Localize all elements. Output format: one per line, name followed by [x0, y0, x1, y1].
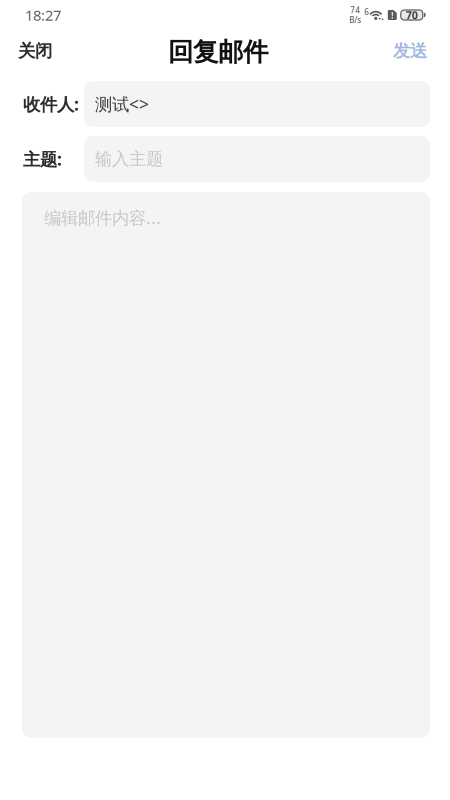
- staticText: 发送: [393, 40, 427, 62]
- staticText: 18:27: [25, 5, 61, 25]
- staticText: 70: [406, 8, 418, 22]
- staticText: 关闭: [18, 40, 52, 62]
- button[interactable]: 测试<>: [84, 81, 430, 127]
- staticText: B/s: [349, 14, 361, 25]
- button[interactable]: 关闭: [0, 30, 70, 70]
- staticText: 编辑邮件内容...: [44, 206, 161, 229]
- staticText: 主题:: [23, 147, 62, 170]
- staticText: 输入主题: [95, 148, 163, 170]
- staticText: 回复邮件: [168, 36, 268, 67]
- staticText: 6: [364, 7, 369, 17]
- staticText: 收件人:: [23, 92, 79, 115]
- staticText: 74: [350, 5, 360, 15]
- button[interactable]: 输入主题: [84, 136, 430, 182]
- button[interactable]: 发送: [370, 30, 450, 70]
- staticText: 测试<>: [95, 92, 149, 115]
